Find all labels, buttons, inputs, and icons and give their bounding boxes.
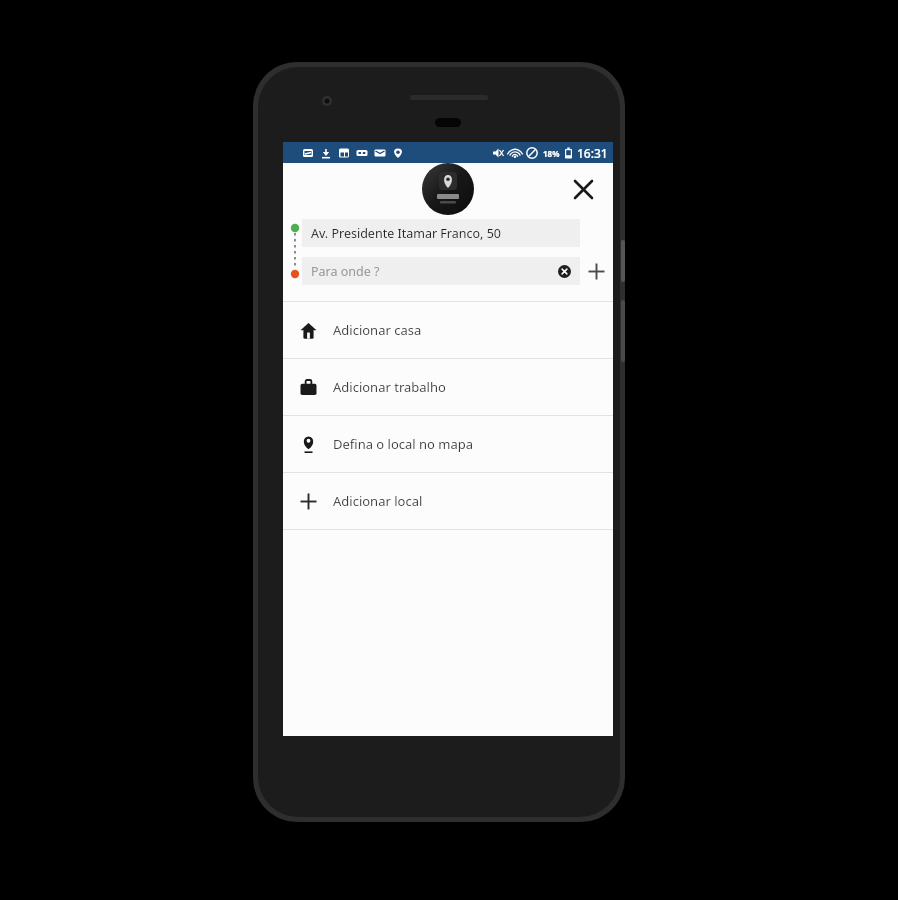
- button[interactable]: Limpar: [554, 261, 574, 281]
- button[interactable]: Adicionar casa: [283, 302, 613, 358]
- button[interactable]: Adicionar parada: [580, 255, 612, 287]
- staticText: Av. Presidente Itamar Franco, 50: [311, 225, 501, 242]
- staticText: Defina o local no mapa: [333, 435, 474, 453]
- button[interactable]: Mobil logo: [422, 163, 474, 215]
- button[interactable]: Adicionar local: [283, 473, 613, 529]
- button[interactable]: Defina o local no mapa: [283, 416, 613, 472]
- button[interactable]: Adicionar trabalho: [283, 359, 613, 415]
- staticText: 16:31: [577, 145, 608, 161]
- staticText: Adicionar casa: [333, 321, 422, 339]
- button[interactable]: Av. Presidente Itamar Franco, 50: [302, 219, 580, 247]
- button[interactable]: Fechar: [563, 169, 603, 209]
- button[interactable]: Para onde ?: [302, 257, 580, 285]
- staticText: 18%: [543, 148, 560, 159]
- staticText: Adicionar local: [333, 492, 423, 510]
- staticText: Adicionar trabalho: [333, 378, 446, 396]
- staticText: Para onde ?: [311, 263, 380, 280]
